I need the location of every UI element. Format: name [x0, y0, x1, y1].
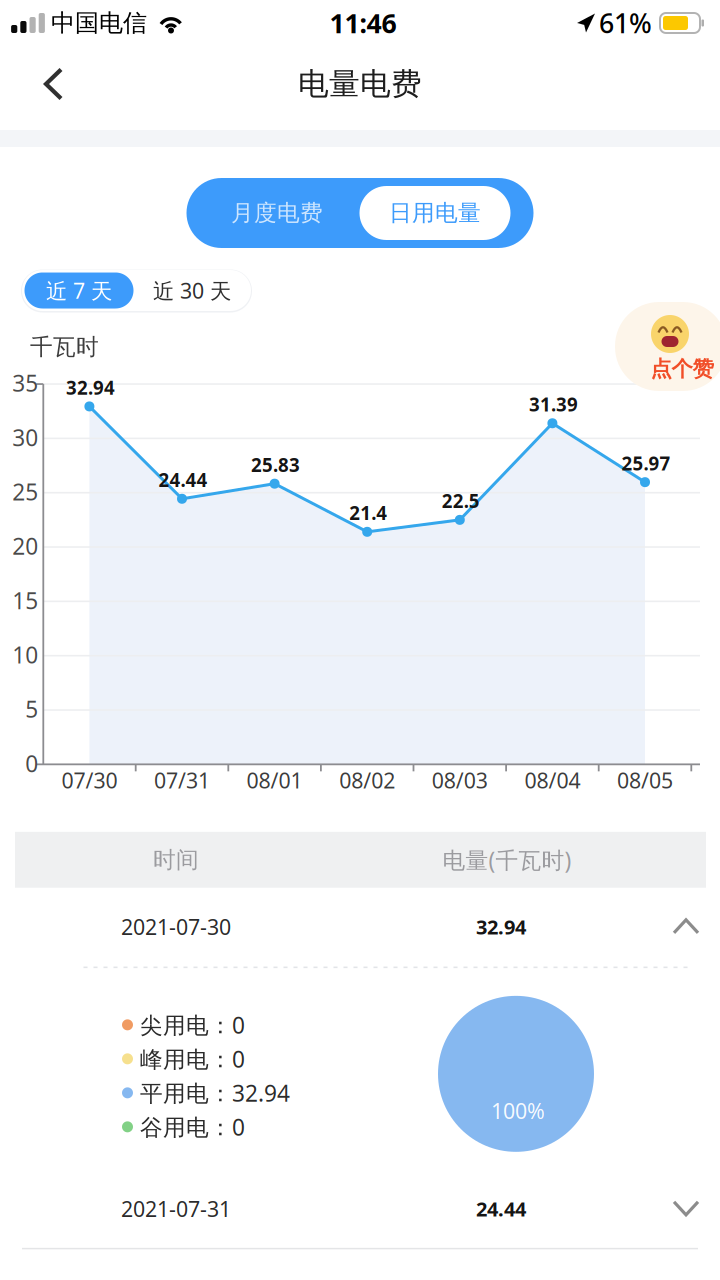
staticText: 61% [599, 5, 652, 41]
button[interactable]: 近 30 天 [133, 272, 250, 308]
button[interactable]: 2021-07-31 [0, 1170, 720, 1248]
staticText: 中国电信 [51, 8, 147, 38]
staticText: 25.83 [251, 452, 300, 477]
staticText: 月度电费 [231, 199, 323, 227]
staticText: 时间 [153, 846, 199, 874]
staticText: 24.44 [476, 1196, 526, 1222]
button[interactable]: 近 7 天 [24, 272, 133, 308]
staticText: 峰用电：0 [140, 1044, 245, 1074]
staticText: 08/01 [247, 766, 303, 794]
staticText: 5 [25, 694, 38, 724]
staticText: 日用电量 [389, 199, 481, 227]
staticText: 千瓦时 [30, 333, 99, 361]
staticText: 32.94 [66, 375, 115, 400]
staticText: 08/05 [617, 766, 673, 794]
staticText: 电量(千瓦时) [442, 845, 571, 875]
staticText: 32.94 [476, 914, 526, 940]
staticText: 电量电费 [298, 65, 422, 103]
staticText: 11:46 [329, 5, 396, 41]
button[interactable]: 2021-07-30 [0, 888, 720, 966]
staticText: 21.4 [349, 500, 387, 525]
staticText: 100% [491, 1097, 545, 1125]
staticText: 07/30 [61, 766, 117, 794]
staticText: 20 [12, 531, 38, 561]
staticText: 08/04 [524, 766, 580, 794]
button[interactable]: 点个赞 [615, 302, 720, 391]
staticText: 07/31 [154, 766, 210, 794]
button[interactable]: 月度电费 [194, 186, 359, 240]
staticText: 25 [12, 477, 38, 507]
staticText: 点个赞 [650, 356, 713, 382]
staticText: 15 [12, 585, 38, 615]
staticText: 近 7 天 [46, 276, 112, 305]
staticText: 30 [12, 422, 38, 452]
staticText: 24.44 [158, 467, 207, 492]
staticText: 08/02 [339, 766, 395, 794]
staticText: 22.5 [442, 488, 480, 513]
button[interactable]: 日用电量 [359, 186, 510, 240]
staticText: 尖用电：0 [140, 1010, 245, 1040]
staticText: 08/03 [432, 766, 488, 794]
staticText: 25.97 [621, 451, 670, 476]
button[interactable]: 返回 [0, 57, 91, 118]
staticText: 2021-07-31 [121, 1195, 231, 1223]
staticText: 0 [25, 748, 38, 778]
staticText: 平用电：32.94 [140, 1078, 290, 1108]
staticText: 10 [12, 640, 38, 670]
staticText: 35 [12, 368, 38, 398]
staticText: 谷用电：0 [140, 1112, 245, 1142]
staticText: 31.39 [529, 392, 578, 417]
staticText: 近 30 天 [153, 276, 231, 305]
staticText: 2021-07-30 [121, 913, 231, 941]
